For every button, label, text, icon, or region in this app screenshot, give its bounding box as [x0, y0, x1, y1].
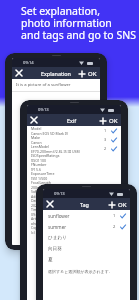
button[interactable]: 向日葵: [43, 243, 130, 254]
button[interactable]: ひまわり: [43, 232, 130, 243]
staticText: Canon: [31, 140, 42, 144]
staticText: [ISO] 100: [31, 158, 47, 162]
button[interactable]: Add: [107, 200, 116, 209]
staticText: Copyright: [31, 225, 48, 230]
staticText: summer: [48, 224, 113, 230]
staticText: DateTime: [31, 198, 47, 203]
staticText: Canon EOS 5D Mark IV: [31, 131, 69, 135]
button[interactable]: Close: [14, 68, 24, 78]
button[interactable]: FNumber: [27, 162, 121, 171]
staticText: Tag: [80, 201, 89, 208]
staticText: It is a picture of a sunflower: [16, 82, 71, 88]
button[interactable]: TimeZone: [27, 207, 121, 216]
button[interactable]: OK: [88, 70, 97, 78]
staticText: LensModel: [31, 144, 49, 149]
button[interactable]: Close: [29, 115, 39, 125]
button[interactable]: Close: [45, 199, 55, 209]
staticText: sunflower: [48, 213, 113, 219]
staticText: 2: [104, 146, 107, 151]
staticText: Software: [31, 189, 46, 194]
staticText: 2021:08:15 09:12: [31, 203, 59, 207]
button[interactable]: sunflower: [43, 210, 130, 221]
staticText: TimeZone: [31, 207, 48, 212]
staticText: ISOSpeedRatings: [31, 153, 60, 158]
staticText: 夏: [48, 257, 116, 263]
staticText: OK: [109, 117, 118, 125]
staticText: [SS] 1/500: [31, 176, 48, 180]
staticText: EF70-200mm f/2.8L IS III USM: [31, 149, 80, 153]
button[interactable]: Add: [98, 116, 107, 125]
staticText: OK: [88, 70, 97, 78]
staticText: 1: [104, 128, 107, 133]
button[interactable]: Artist: [27, 216, 121, 225]
staticText: 09:14: [23, 60, 34, 66]
staticText: Exif: [67, 117, 77, 124]
staticText: 09:13: [54, 191, 65, 197]
staticText: Make: [31, 135, 40, 140]
button[interactable]: Software: [27, 189, 121, 198]
staticText: 3: [104, 137, 107, 142]
staticText: 2: [113, 224, 116, 229]
button[interactable]: Add: [77, 69, 86, 78]
button[interactable]: ExposureTime: [27, 171, 121, 180]
staticText: Explanation: [41, 70, 71, 77]
staticText: 200mm: [31, 185, 44, 189]
button[interactable]: Copyright: [27, 225, 121, 234]
staticText: ExposureTime: [31, 171, 55, 176]
staticText: 09:13: [38, 107, 49, 113]
staticText: [F] 5.6: [31, 167, 42, 171]
staticText: 選択すると選択順が表示されます。: [48, 269, 113, 274]
staticText: FocalLength: [31, 180, 52, 185]
staticText: 1: [113, 213, 116, 218]
button[interactable]: 夏: [43, 254, 130, 265]
staticText: FNumber: [31, 162, 47, 167]
staticText: ひまわり: [48, 235, 116, 241]
button[interactable]: FocalLength: [27, 180, 121, 189]
button[interactable]: OK: [118, 201, 127, 209]
button[interactable]: Make: [27, 135, 121, 144]
button[interactable]: summer: [43, 221, 130, 232]
staticText: OK: [118, 201, 127, 209]
staticText: Artist: [31, 216, 40, 221]
button[interactable]: LensModel: [27, 144, 121, 153]
button[interactable]: DateTime: [27, 198, 121, 207]
button[interactable]: Model: [27, 126, 121, 135]
staticText: Model: [31, 126, 42, 131]
button[interactable]: OK: [109, 117, 118, 125]
button[interactable]: ISOSpeedRatings: [27, 153, 121, 162]
staticText: photographer: [31, 221, 55, 225]
staticText: Set explanation, photo information and t…: [21, 4, 136, 42]
staticText: 09:12: [31, 212, 40, 216]
staticText: Adobe Photoshop 22.5: [31, 194, 69, 198]
staticText: 向日葵: [48, 246, 116, 252]
staticText: (c) 2021: [31, 230, 44, 234]
